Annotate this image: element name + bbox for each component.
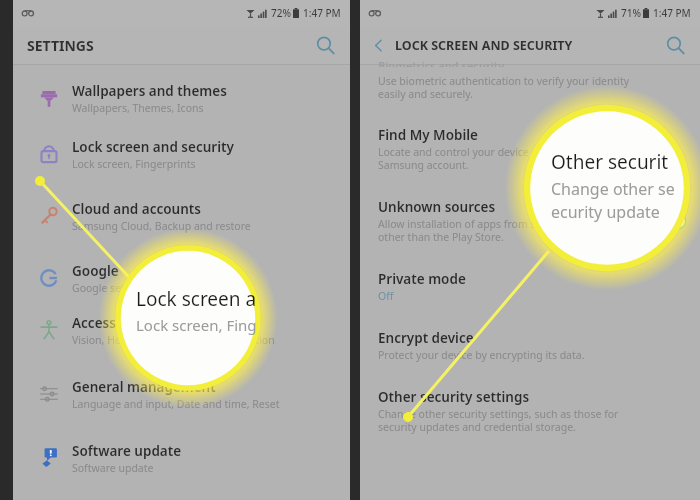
staticText: Cloud and accounts [72, 200, 201, 218]
button[interactable]: Google [13, 253, 350, 303]
button[interactable]: Cloud and accounts [13, 191, 350, 241]
staticText: Software update [72, 461, 154, 475]
staticText: 71% [621, 6, 641, 20]
staticText: Wallpapers, Themes, Icons [72, 101, 204, 115]
button[interactable]: Accessibility [13, 305, 350, 355]
button[interactable]: Other security settings [360, 385, 700, 437]
button[interactable]: Back [364, 31, 392, 59]
staticText: Encrypt device [378, 329, 474, 347]
staticText: Google [72, 262, 119, 280]
staticText: Change other security settings, such as … [378, 407, 619, 434]
staticText: Other security settings [378, 388, 530, 406]
staticText: Unknown sources [378, 198, 496, 216]
staticText: Samsung Cloud, Backup and restore [72, 219, 251, 233]
button[interactable]: Search [310, 30, 340, 60]
staticText: Software update [72, 442, 182, 460]
staticText: Private mode [378, 270, 466, 288]
staticText: LOCK SCREEN AND SECURITY [395, 37, 573, 54]
staticText: Allow installation of apps from sources … [378, 217, 569, 244]
button[interactable]: General management [13, 369, 350, 419]
staticText: Lock screen, Fingerprints [72, 157, 196, 171]
staticText: Biometrics and security [378, 58, 505, 67]
staticText: SETTINGS [27, 36, 94, 55]
staticText: Lock screen, Fing [136, 315, 257, 335]
button[interactable]: Unknown sources [360, 195, 700, 247]
staticText: Use biometric authentication to verify y… [378, 74, 630, 101]
staticText: 1:47 PM [653, 6, 691, 20]
button[interactable] [653, 213, 686, 229]
staticText: Locate and control your device remotely … [378, 145, 631, 172]
staticText: Change other se [551, 178, 675, 200]
staticText: General management [72, 378, 216, 396]
staticText: Find My Mobile [378, 126, 478, 144]
staticText: Google settings [72, 281, 150, 295]
staticText: Off [378, 289, 394, 303]
staticText: 72% [271, 6, 291, 20]
button[interactable]: Wallpapers and themes [13, 71, 350, 125]
staticText: ecurity update [551, 201, 660, 223]
staticText: Lock screen a [136, 286, 257, 312]
staticText: Protect your device by encrypting its da… [378, 348, 585, 362]
button[interactable]: Software update [13, 433, 350, 483]
button[interactable]: Lock screen and security [13, 129, 350, 179]
staticText: Wallpapers and themes [72, 82, 227, 100]
staticText: Lock screen and security [72, 138, 234, 156]
button[interactable]: Private mode [360, 267, 700, 306]
button[interactable]: Encrypt device [360, 326, 700, 365]
staticText: Other securit [551, 149, 669, 175]
staticText: 1:47 PM [303, 6, 341, 20]
button[interactable]: Search [660, 30, 690, 60]
button[interactable]: Find My Mobile [360, 123, 700, 175]
staticText: Language and input, Date and time, Reset [72, 397, 280, 411]
staticText: Accessibility [72, 314, 153, 332]
staticText: Vision, Hearing, Dexterity and interacti… [72, 333, 275, 347]
